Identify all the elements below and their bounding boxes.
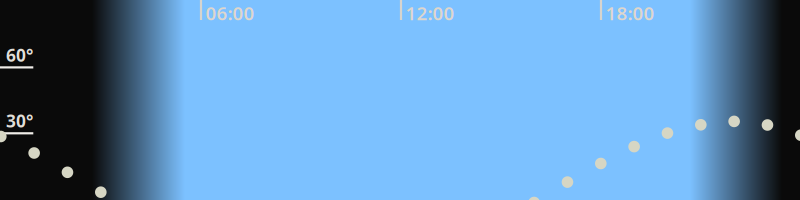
button[interactable]: 24-hour temperature forecast	[0, 0, 800, 200]
staticText: 18:00	[605, 1, 654, 25]
staticText: 06:00	[205, 1, 254, 25]
staticText: 30°	[6, 109, 33, 132]
staticText: 60°	[6, 43, 33, 66]
staticText: 12:00	[405, 1, 454, 25]
